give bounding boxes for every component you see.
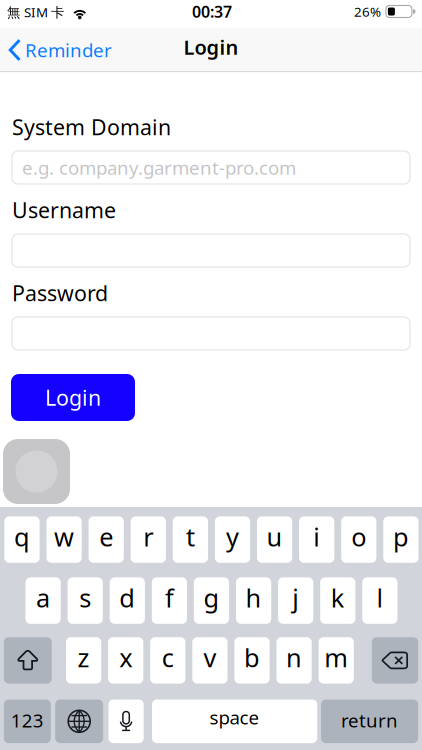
staticText: Reminder: [25, 38, 112, 62]
button[interactable]: q: [4, 516, 40, 563]
button[interactable]: a: [25, 577, 61, 624]
button[interactable]: o: [341, 516, 376, 563]
staticText: e.g. company.garment-pro.com: [22, 155, 296, 180]
staticText: n: [286, 641, 302, 674]
staticText: u: [267, 520, 283, 553]
staticText: k: [331, 581, 345, 614]
button[interactable]: Login: [11, 374, 135, 421]
button[interactable]: Delete: [372, 637, 418, 684]
staticText: d: [119, 581, 135, 614]
staticText: z: [78, 641, 90, 674]
button[interactable]: Shift: [4, 637, 52, 684]
button[interactable]: x: [108, 637, 143, 684]
button[interactable]: c: [150, 637, 185, 684]
staticText: j: [292, 581, 299, 614]
staticText: p: [393, 520, 409, 553]
staticText: t: [186, 520, 195, 553]
button[interactable]: y: [215, 516, 250, 563]
button[interactable]: u: [257, 516, 292, 563]
staticText: Login: [183, 34, 238, 60]
button[interactable]: n: [276, 637, 312, 684]
button[interactable]: w: [46, 516, 82, 563]
button[interactable]: h: [236, 577, 271, 624]
staticText: h: [246, 581, 262, 614]
staticText: x: [119, 641, 132, 674]
staticText: f: [165, 581, 174, 614]
staticText: 00:37: [192, 1, 232, 22]
button[interactable]: f: [152, 577, 187, 624]
button[interactable]: i: [299, 516, 334, 563]
button[interactable]: d: [110, 577, 145, 624]
button[interactable]: v: [192, 637, 227, 684]
staticText: r: [143, 520, 153, 553]
staticText: y: [226, 520, 239, 553]
staticText: Password: [12, 279, 108, 307]
staticText: i: [313, 520, 320, 553]
staticText: q: [14, 520, 30, 553]
staticText: v: [203, 641, 216, 674]
button[interactable]: b: [234, 637, 270, 684]
button[interactable]: p: [383, 516, 418, 563]
staticText: a: [36, 581, 50, 614]
staticText: w: [54, 520, 74, 553]
button[interactable]: z: [66, 637, 101, 684]
button[interactable]: l: [362, 577, 397, 624]
button[interactable]: k: [320, 577, 355, 624]
staticText: space: [210, 705, 260, 730]
button[interactable]: m: [319, 637, 354, 684]
staticText: l: [376, 581, 383, 614]
staticText: return: [341, 708, 398, 733]
button[interactable]: Dictation: [108, 699, 144, 743]
button[interactable]: return: [321, 699, 418, 743]
staticText: Login: [45, 383, 101, 412]
staticText: o: [351, 520, 366, 553]
button[interactable]: space: [152, 699, 317, 743]
staticText: b: [244, 641, 260, 674]
staticText: m: [324, 641, 348, 674]
button[interactable]: j: [278, 577, 313, 624]
staticText: s: [79, 581, 91, 614]
staticText: g: [203, 581, 219, 614]
button[interactable]: g: [194, 577, 229, 624]
button[interactable]: Reminder: [4, 28, 116, 72]
staticText: Username: [12, 196, 116, 224]
staticText: c: [162, 641, 174, 674]
staticText: 123: [11, 708, 44, 733]
button[interactable]: e: [89, 516, 124, 563]
button[interactable]: t: [173, 516, 208, 563]
staticText: 26%: [354, 3, 381, 20]
staticText: System Domain: [12, 113, 171, 141]
button[interactable]: s: [68, 577, 103, 624]
staticText: 無 SIM 卡: [7, 3, 64, 21]
button[interactable]: 123: [4, 699, 51, 743]
button[interactable]: Next keyboard: [55, 699, 103, 743]
button[interactable]: r: [131, 516, 166, 563]
staticText: e: [99, 520, 113, 553]
